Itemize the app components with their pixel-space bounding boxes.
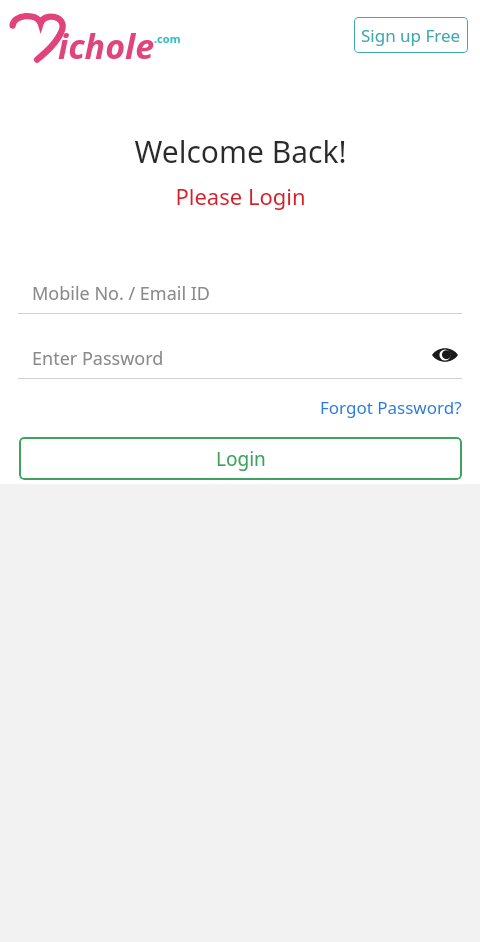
staticText: Welcome Back! [134,131,347,172]
staticText: ichole [58,23,155,69]
button[interactable]: Forgot Password? [320,396,462,419]
button[interactable]: Login [19,437,462,480]
button[interactable]: Enter Password [18,337,462,379]
staticText: Please Login [175,181,306,211]
staticText: .com [154,31,181,46]
button[interactable]: Show password [428,338,462,372]
button[interactable]: Sign up Free [354,17,468,53]
staticText: Mobile No. / Email ID [32,281,211,306]
staticText: Enter Password [32,346,164,371]
staticText: Sign up Free [361,24,461,47]
button[interactable]: Mobile No. / Email ID [18,272,462,314]
staticText: Login [216,446,266,472]
staticText: Forgot Password? [320,396,462,419]
